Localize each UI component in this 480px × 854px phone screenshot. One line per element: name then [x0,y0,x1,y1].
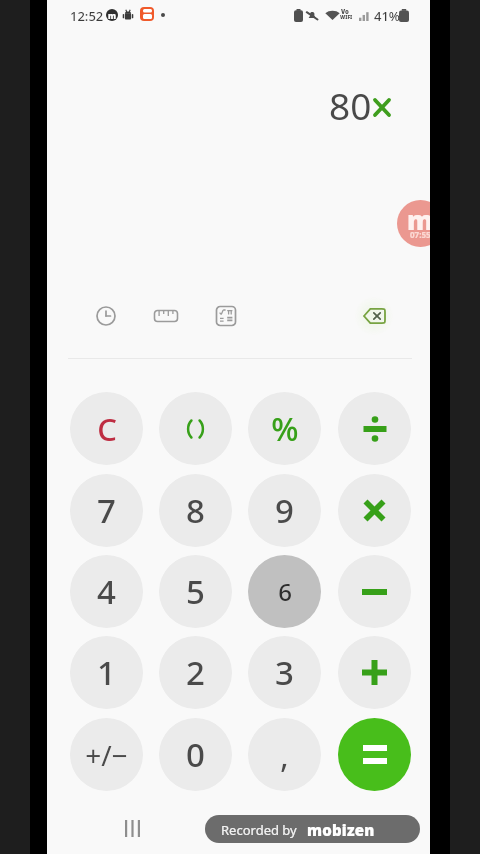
button[interactable]: 2 [159,636,232,709]
staticText: 12:52 [70,7,104,25]
staticText: 8 [186,488,205,533]
staticText: 80 [329,80,372,130]
button[interactable]: Scientific calculator [205,295,247,337]
button[interactable]: Parentheses [159,392,232,465]
button[interactable]: 3 [248,636,321,709]
button[interactable]: 6 [248,555,321,628]
staticText: 9 [275,488,294,533]
staticText: 5 [186,569,205,614]
staticText: +/− [85,736,128,774]
staticText: , [280,733,289,778]
staticText: Recorded by [221,821,297,839]
button[interactable]: Minus [338,555,411,628]
staticText: mobizen [307,820,375,840]
button[interactable]: Equals [338,718,411,791]
staticText: m [108,10,116,21]
button[interactable]: Multiply [338,474,411,547]
button[interactable]: 4 [70,555,143,628]
button[interactable]: 7 [70,474,143,547]
button[interactable]: 5 [159,555,232,628]
button[interactable]: History [85,295,127,337]
staticText: 6 [278,575,292,608]
button[interactable]: C [70,392,143,465]
button[interactable]: 8 [159,474,232,547]
staticText: 7 [97,488,116,533]
staticText: C [97,408,117,450]
staticText: m [407,202,430,237]
button[interactable]: 1 [70,636,143,709]
staticText: Vo [341,8,349,16]
button[interactable]: Plus [338,636,411,709]
button[interactable]: Divide [338,392,411,465]
button[interactable]: Backspace [353,295,395,337]
button[interactable]: Unit converter [145,295,187,337]
staticText: 3 [275,650,294,695]
button[interactable]: 0 [159,718,232,791]
staticText: % [271,407,299,451]
staticText: 0 [186,732,205,777]
button[interactable]: % [248,392,321,465]
staticText: 4 [97,569,116,614]
staticText: 2 [186,650,205,695]
button[interactable]: Recents [112,808,152,848]
staticText: WIFI [340,14,353,21]
button[interactable]: , [248,718,321,791]
staticText: 1 [97,650,116,695]
button[interactable]: +/− [70,718,143,791]
staticText: 41% [374,7,400,25]
staticText: 07:55 [410,229,430,240]
button[interactable]: 9 [248,474,321,547]
